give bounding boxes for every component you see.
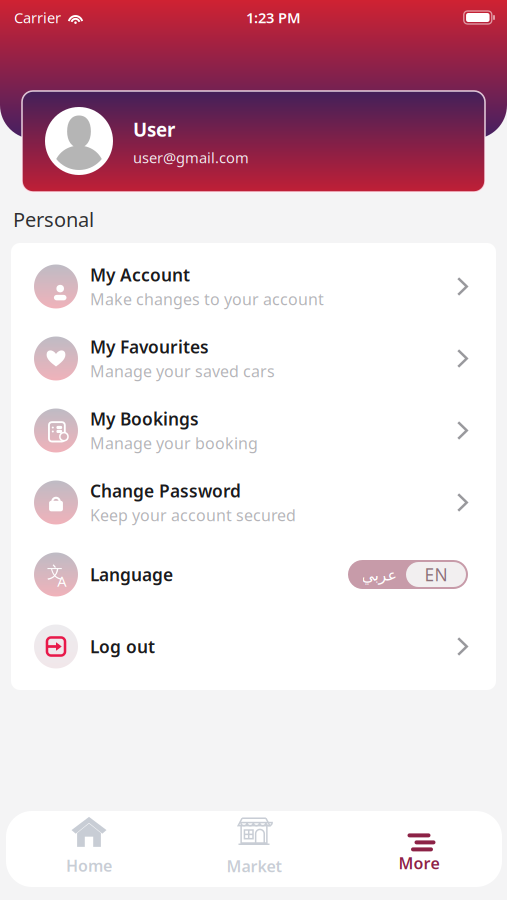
button[interactable]: Home [6,811,171,887]
staticText: User [133,117,175,142]
staticText: More [398,852,439,874]
button[interactable]: More [336,811,501,887]
staticText: Change Password [90,479,241,502]
button[interactable]: Log out [11,610,496,682]
staticText: My Account [90,263,190,286]
staticText: 1:23 PM [246,8,301,27]
staticText: Make changes to your account [90,288,324,310]
button[interactable]: Market [171,811,336,887]
button[interactable]: My Account [11,250,496,322]
staticText: Personal [13,206,94,233]
button[interactable]: Change Password [11,466,496,538]
button[interactable]: Language: English selected, switch to Ar… [348,560,468,589]
staticText: Market [226,855,281,877]
staticText: Keep your account secured [90,504,296,526]
staticText: Home [66,855,112,876]
staticText: Log out [90,635,155,658]
staticText: Manage your booking [90,432,258,454]
staticText: عربي [361,566,397,584]
staticText: Carrier [14,8,61,27]
staticText: A [57,571,66,591]
staticText: user@gmail.com [133,148,249,167]
button[interactable]: 文 [11,538,496,610]
button[interactable]: My Favourites [11,322,496,394]
button[interactable]: My Bookings [11,394,496,466]
button[interactable]: User [22,91,485,192]
staticText: Manage your saved cars [90,360,275,382]
staticText: 文 [47,562,63,582]
staticText: My Favourites [90,335,209,358]
staticText: EN [424,563,447,586]
staticText: My Bookings [90,407,199,430]
staticText: Language [90,563,173,586]
